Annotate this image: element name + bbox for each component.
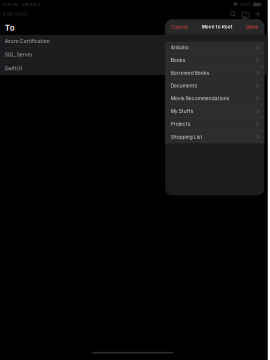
button[interactable]: Done <box>243 21 261 32</box>
staticText: My Items <box>7 11 28 17</box>
staticText: To <box>5 23 15 33</box>
button[interactable]: New item <box>252 9 264 18</box>
button[interactable]: Search <box>227 9 239 18</box>
staticText: SQL, Server <box>5 52 33 58</box>
button[interactable]: Documents <box>165 80 264 92</box>
button[interactable]: Movie Recommendations <box>165 92 264 105</box>
staticText: Cancel <box>171 24 188 30</box>
button[interactable]: Move to folder <box>239 9 252 18</box>
staticText: 5:18 PM Sat May 2 <box>3 2 40 7</box>
staticText: Books <box>171 57 186 63</box>
staticText: Movie Recommendations <box>171 96 230 101</box>
staticText: 100% <box>240 2 252 7</box>
staticText: Documents <box>171 83 198 89</box>
button[interactable]: My Items <box>1 9 30 18</box>
staticText: Move to Root <box>202 24 233 30</box>
staticText: SwiftUI <box>5 65 22 71</box>
button[interactable]: Projects <box>165 118 264 130</box>
button[interactable]: Arduino <box>165 41 264 54</box>
staticText: Done <box>246 24 258 30</box>
button[interactable]: Shopping List <box>165 131 264 143</box>
button[interactable]: Books <box>165 54 264 67</box>
button[interactable]: Borrowed Books <box>165 67 264 80</box>
button[interactable]: My Stuffs <box>165 105 264 118</box>
staticText: My Stuffs <box>171 108 194 114</box>
button[interactable]: Azure Certification <box>0 35 268 48</box>
staticText: Projects <box>171 121 191 127</box>
staticText: Shopping List <box>171 134 203 140</box>
button[interactable]: SwiftUI <box>0 62 268 75</box>
staticText: Borrowed Books <box>171 70 210 76</box>
button[interactable]: Cancel <box>168 21 191 32</box>
staticText: Azure Certification <box>5 38 50 44</box>
button[interactable]: SQL, Server <box>0 48 268 62</box>
staticText: Arduino <box>171 45 189 50</box>
